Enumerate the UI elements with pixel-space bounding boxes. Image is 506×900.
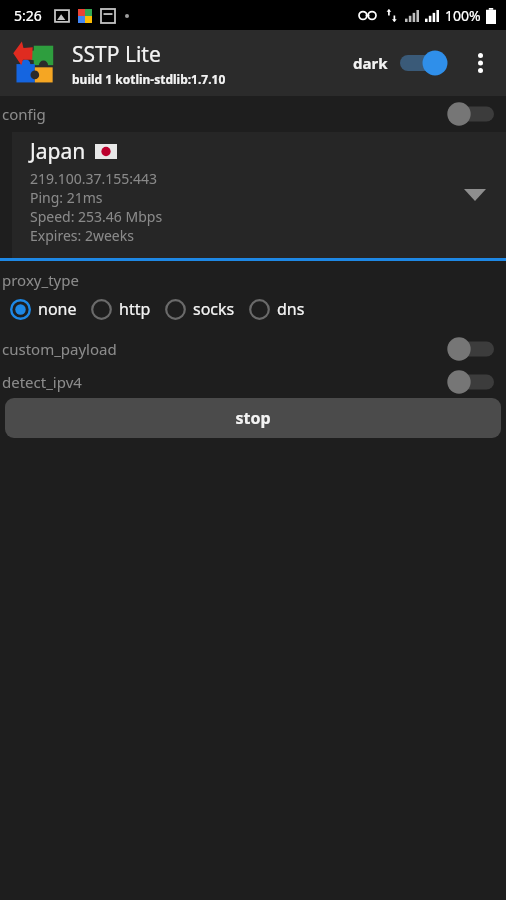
- button[interactable]: config toggle: [446, 101, 494, 127]
- staticText: Japan: [30, 137, 86, 166]
- button[interactable]: socks: [155, 295, 239, 323]
- button[interactable]: detect_ipv4: [0, 365, 506, 398]
- staticText: build 1 kotlin-stdlib:1.7.10: [72, 71, 226, 87]
- button[interactable]: Dark theme: [400, 50, 448, 76]
- staticText: custom_payload: [2, 339, 446, 359]
- staticText: 100%: [445, 6, 481, 25]
- button[interactable]: More options: [464, 47, 496, 79]
- staticText: socks: [193, 298, 235, 320]
- staticText: Expires: 2weeks: [30, 226, 134, 245]
- staticText: dns: [277, 298, 305, 320]
- button[interactable]: http: [81, 295, 155, 323]
- staticText: config: [2, 104, 446, 124]
- button[interactable]: stop: [5, 398, 501, 438]
- button[interactable]: dns: [239, 295, 309, 323]
- staticText: SSTP Lite: [72, 40, 161, 69]
- button[interactable]: custom_payload toggle: [446, 336, 494, 362]
- staticText: Ping: 21ms: [30, 188, 103, 207]
- staticText: stop: [235, 407, 271, 429]
- button[interactable]: Expand server details: [454, 174, 496, 216]
- staticText: dark: [353, 53, 388, 73]
- button[interactable]: custom_payload: [0, 332, 506, 365]
- staticText: http: [119, 298, 151, 320]
- staticText: Speed: 253.46 Mbps: [30, 207, 163, 226]
- staticText: proxy_type: [2, 270, 79, 290]
- staticText: detect_ipv4: [2, 372, 446, 392]
- staticText: 5:26: [14, 6, 42, 25]
- staticText: 219.100.37.155:443: [30, 169, 158, 188]
- button[interactable]: none: [0, 295, 81, 323]
- staticText: none: [38, 298, 77, 320]
- button[interactable]: Japan: [12, 132, 506, 258]
- button[interactable]: config: [0, 96, 506, 132]
- button[interactable]: detect_ipv4 toggle: [446, 369, 494, 395]
